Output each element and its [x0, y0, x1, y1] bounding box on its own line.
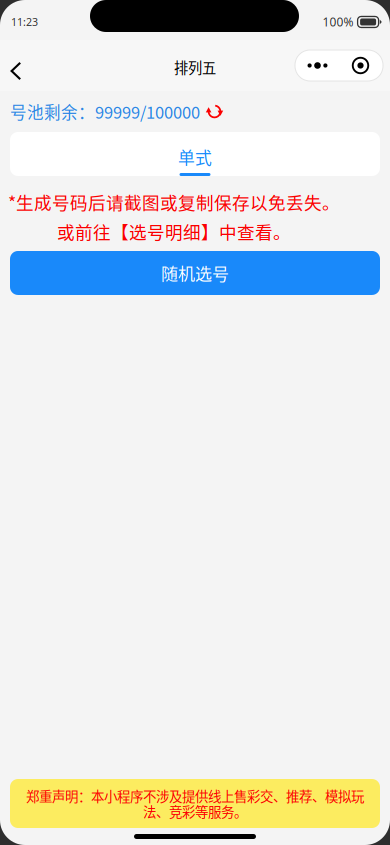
staticText: 郑重声明：本小程序不涉及提供线上售彩交、推荐、模拟玩	[26, 786, 364, 805]
staticText: *生成号码后请截图或复制保存以免丢失。	[8, 189, 340, 214]
staticText: 随机选号	[161, 261, 229, 285]
staticText: 号池剩余：99999/100000	[10, 99, 200, 123]
staticText: 排列五	[174, 57, 216, 77]
staticText: 单式	[178, 145, 212, 169]
button[interactable]: Close mini program	[339, 50, 382, 80]
staticText: 法、竞彩等服务。	[143, 801, 247, 821]
staticText: 100%	[323, 14, 354, 30]
button[interactable]: Back	[0, 40, 44, 91]
button[interactable]: 随机选号	[10, 251, 380, 295]
staticText: 11:23	[11, 15, 38, 29]
staticText: 或前往【选号明细】中查看。	[57, 218, 291, 244]
button[interactable]: More	[296, 50, 339, 80]
